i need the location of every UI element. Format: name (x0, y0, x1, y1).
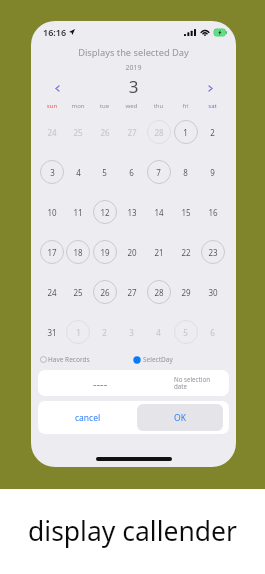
staticText: thu (145, 102, 172, 110)
staticText: OK (174, 412, 186, 424)
button[interactable]: 1 (65, 312, 91, 352)
staticText: 12 (100, 207, 110, 218)
staticText: 18 (73, 247, 83, 258)
button[interactable]: Have Records (40, 355, 133, 364)
staticText: 16 (208, 207, 218, 218)
button[interactable]: 28 (145, 112, 172, 152)
staticText: 27 (127, 287, 137, 298)
staticText: 25 (73, 127, 83, 138)
staticText: 26 (100, 287, 110, 298)
button[interactable]: 26 (91, 112, 118, 152)
button[interactable]: 26 (91, 272, 118, 312)
staticText: 1 (183, 127, 188, 138)
button[interactable]: 7 (145, 152, 172, 192)
staticText: 5 (183, 327, 188, 338)
button[interactable]: 3 (39, 152, 65, 192)
button[interactable]: 21 (145, 232, 172, 272)
staticText: cancel (75, 412, 101, 424)
button[interactable]: 15 (172, 192, 199, 232)
staticText: 14 (154, 207, 164, 218)
staticText: display callender (0, 513, 265, 549)
staticText: 23 (208, 247, 218, 258)
button[interactable]: 6 (199, 312, 226, 352)
button[interactable]: 4 (65, 152, 91, 192)
button[interactable]: 25 (65, 272, 91, 312)
button[interactable]: 12 (91, 192, 118, 232)
staticText: 10 (47, 207, 57, 218)
button[interactable]: SelectDay (133, 355, 227, 364)
staticText: 8 (183, 167, 188, 178)
staticText: 31 (47, 327, 57, 338)
staticText: 30 (208, 287, 218, 298)
button[interactable]: 23 (199, 232, 226, 272)
staticText: 15 (181, 207, 191, 218)
staticText: 2 (210, 127, 215, 138)
button[interactable]: 9 (199, 152, 226, 192)
staticText: 4 (76, 167, 81, 178)
staticText: sun (39, 102, 65, 110)
staticText: 27 (127, 127, 137, 138)
button[interactable]: 11 (65, 192, 91, 232)
button[interactable]: 5 (172, 312, 199, 352)
staticText: No selection date (174, 375, 210, 391)
button[interactable]: 16 (199, 192, 226, 232)
staticText: SelectDay (143, 355, 173, 364)
staticText: 20 (127, 247, 137, 258)
button[interactable]: cancel (38, 404, 137, 431)
button[interactable]: 29 (172, 272, 199, 312)
button[interactable]: 6 (118, 152, 145, 192)
staticText: 16:16 (43, 26, 67, 38)
button[interactable]: 14 (145, 192, 172, 232)
staticText: 22 (181, 247, 191, 258)
button[interactable]: OK (137, 404, 223, 431)
button[interactable]: 20 (118, 232, 145, 272)
staticText: 3 (50, 167, 55, 178)
staticText: 29 (181, 287, 191, 298)
button[interactable]: 8 (172, 152, 199, 192)
staticText: 24 (47, 127, 57, 138)
staticText: 2019 (31, 63, 236, 73)
staticText: 3 (129, 327, 134, 338)
staticText: ---- (93, 376, 108, 391)
staticText: wed (118, 102, 145, 110)
button[interactable]: ---- (38, 370, 229, 396)
button[interactable]: 1 (172, 112, 199, 152)
button[interactable]: Next month (203, 81, 217, 95)
staticText: 2 (102, 327, 107, 338)
button[interactable]: 27 (118, 272, 145, 312)
button[interactable]: 31 (39, 312, 65, 352)
button[interactable]: 13 (118, 192, 145, 232)
staticText: 7 (156, 167, 161, 178)
staticText: fri (172, 102, 199, 110)
staticText: 17 (47, 247, 57, 258)
button[interactable]: 30 (199, 272, 226, 312)
button[interactable]: 27 (118, 112, 145, 152)
button[interactable]: 25 (65, 112, 91, 152)
button[interactable]: 18 (65, 232, 91, 272)
button[interactable]: 17 (39, 232, 65, 272)
staticText: 26 (100, 127, 110, 138)
staticText: 6 (210, 327, 215, 338)
button[interactable]: 28 (145, 272, 172, 312)
button[interactable]: 24 (39, 112, 65, 152)
staticText: Have Records (48, 355, 90, 364)
staticText: mon (65, 102, 91, 110)
button[interactable]: 2 (199, 112, 226, 152)
button[interactable]: 24 (39, 272, 65, 312)
staticText: 25 (73, 287, 83, 298)
staticText: 28 (154, 287, 164, 298)
staticText: 11 (73, 207, 83, 218)
staticText: 24 (47, 287, 57, 298)
button[interactable]: 19 (91, 232, 118, 272)
button[interactable]: 3 (118, 312, 145, 352)
button[interactable]: 2 (91, 312, 118, 352)
staticText: 1 (76, 327, 81, 338)
staticText: 4 (156, 327, 161, 338)
button[interactable]: 5 (91, 152, 118, 192)
button[interactable]: 10 (39, 192, 65, 232)
button[interactable]: 4 (145, 312, 172, 352)
button[interactable]: 22 (172, 232, 199, 272)
staticText: 5 (102, 167, 107, 178)
button[interactable]: Previous month (50, 81, 64, 95)
staticText: Displays the selected Day (31, 46, 236, 59)
